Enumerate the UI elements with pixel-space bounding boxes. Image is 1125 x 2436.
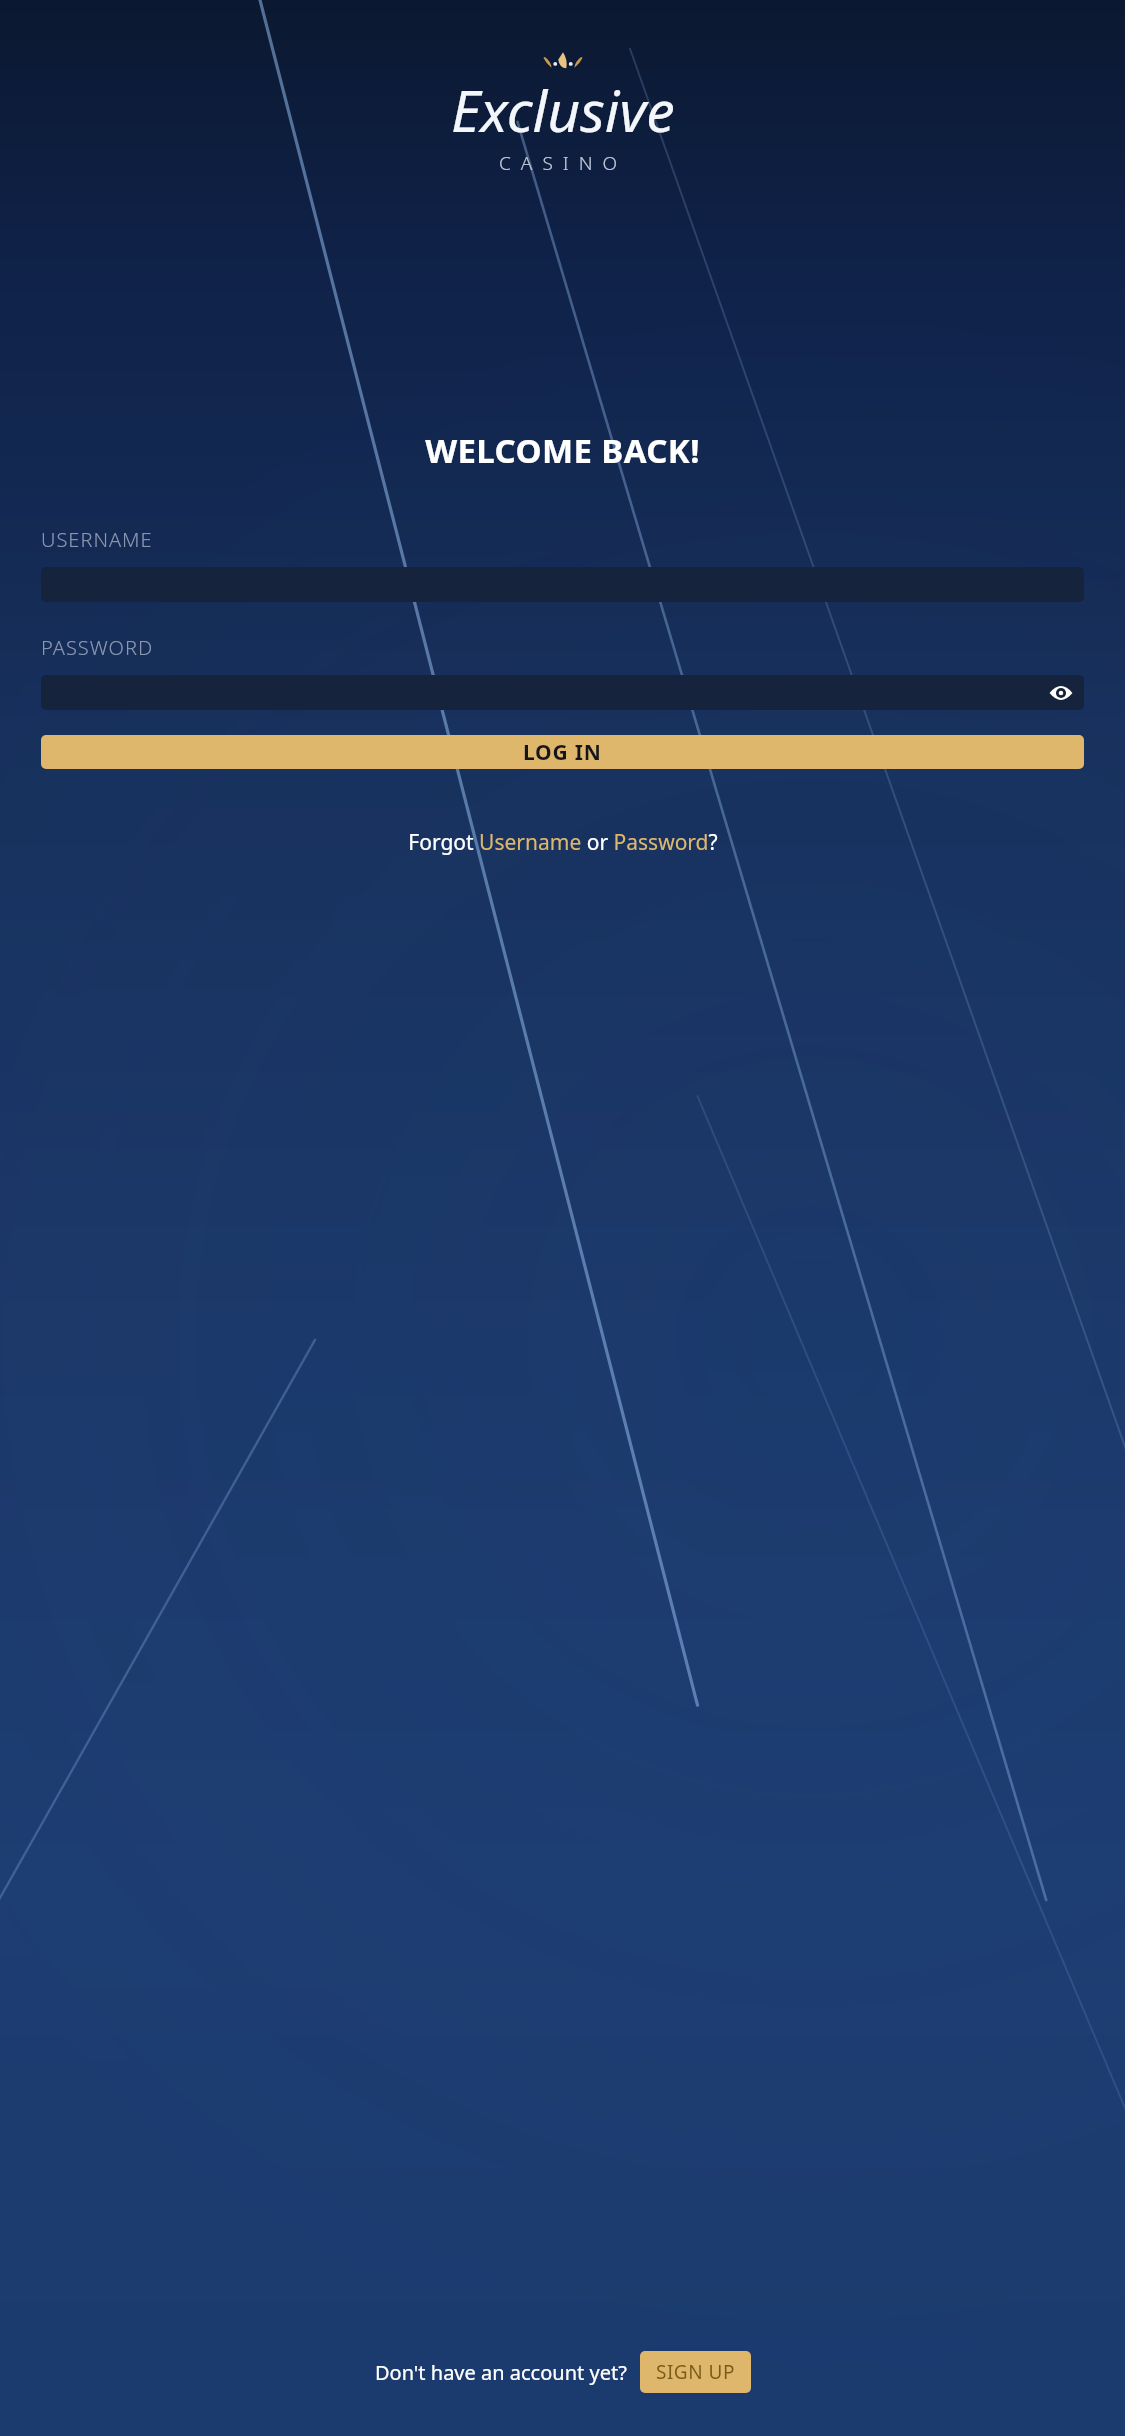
button[interactable]: LOG IN (41, 735, 1084, 769)
staticText: WELCOME BACK! (425, 428, 700, 473)
staticText: CASINO (499, 150, 628, 176)
staticText: Exclusive (451, 71, 675, 149)
staticText: LOG IN (523, 738, 602, 767)
staticText: PASSWORD (41, 634, 154, 661)
button[interactable]: SIGN UP (640, 2351, 751, 2393)
staticText: Don't have an account yet? (375, 2359, 627, 2386)
staticText: SIGN UP (656, 2359, 735, 2385)
button[interactable]: Forgot Username or Password? (398, 822, 728, 863)
button[interactable]: Show password (1046, 678, 1076, 708)
staticText: USERNAME (41, 526, 153, 553)
staticText: Forgot Username or Password? (408, 828, 718, 857)
button[interactable]: Show password (41, 675, 1084, 710)
